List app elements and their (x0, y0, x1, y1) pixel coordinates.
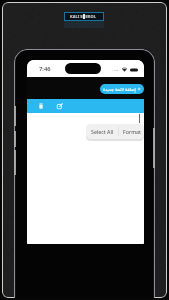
button[interactable]: Select All (86, 124, 118, 139)
staticText: Select All (91, 128, 114, 135)
staticText: 7:46 (39, 65, 51, 73)
button[interactable]: Edit (55, 101, 65, 111)
button[interactable]: إضافة لائحة جديدة (100, 84, 144, 94)
button[interactable]: Format (119, 124, 144, 139)
button[interactable]: Delete (36, 101, 46, 111)
staticText: KALI SHEROL (70, 14, 96, 19)
staticText: إضافة لائحة جديدة (103, 86, 136, 92)
staticText: Format (123, 128, 141, 135)
